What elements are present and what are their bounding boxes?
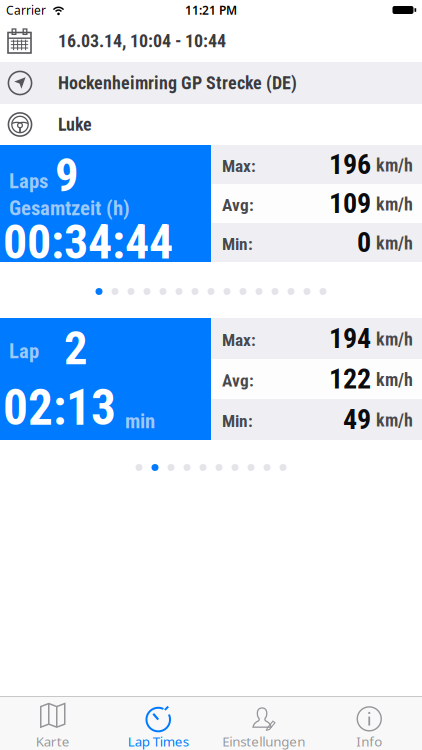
staticText: Max: <box>222 330 256 350</box>
staticText: km/h <box>376 369 413 390</box>
staticText: min <box>125 409 155 433</box>
staticText: 109 <box>329 187 371 220</box>
staticText: Laps <box>9 169 48 193</box>
staticText: 122 <box>329 363 371 395</box>
staticText: 196 <box>329 148 371 181</box>
staticText: 16.03.14, 10:04 - 10:44 <box>58 30 226 52</box>
button[interactable]: Summary page indicator <box>95 262 326 318</box>
staticText: 11:21 PM <box>185 2 237 18</box>
staticText: Min: <box>222 411 253 431</box>
button[interactable]: Info <box>316 697 422 750</box>
button[interactable]: Einstellungen <box>211 697 316 750</box>
staticText: Lap <box>9 339 39 363</box>
staticText: 00:34:44 <box>3 214 173 270</box>
button[interactable]: Lap Times <box>105 697 211 750</box>
staticText: Gesamtzeit (h) <box>9 196 130 220</box>
staticText: Carrier <box>6 2 46 18</box>
staticText: km/h <box>376 410 413 431</box>
staticText: Max: <box>222 156 256 176</box>
staticText: km/h <box>376 329 413 350</box>
staticText: Lap Times <box>128 732 189 750</box>
button[interactable]: 16.03.14, 10:04 - 10:44 <box>0 20 422 62</box>
staticText: km/h <box>376 194 413 215</box>
staticText: 194 <box>329 322 371 355</box>
staticText: Min: <box>222 234 253 254</box>
staticText: 49 <box>343 403 371 436</box>
staticText: Hockenheimring GP Strecke (DE) <box>58 72 297 94</box>
staticText: Info <box>356 732 382 750</box>
staticText: 02:13 <box>3 379 116 437</box>
staticText: Avg: <box>222 370 254 391</box>
button[interactable]: Luke <box>0 104 422 145</box>
staticText: 2 <box>64 321 88 376</box>
staticText: 0 <box>357 226 371 259</box>
staticText: 9 <box>55 148 79 203</box>
staticText: Avg: <box>222 195 254 215</box>
staticText: Einstellungen <box>222 732 305 750</box>
button[interactable]: Karte <box>0 697 105 750</box>
staticText: Karte <box>36 732 70 750</box>
button[interactable]: Lap page indicator <box>135 440 286 492</box>
button[interactable]: Hockenheimring GP Strecke (DE) <box>0 62 422 104</box>
staticText: Luke <box>58 114 92 135</box>
staticText: km/h <box>376 155 413 176</box>
staticText: km/h <box>376 233 413 254</box>
